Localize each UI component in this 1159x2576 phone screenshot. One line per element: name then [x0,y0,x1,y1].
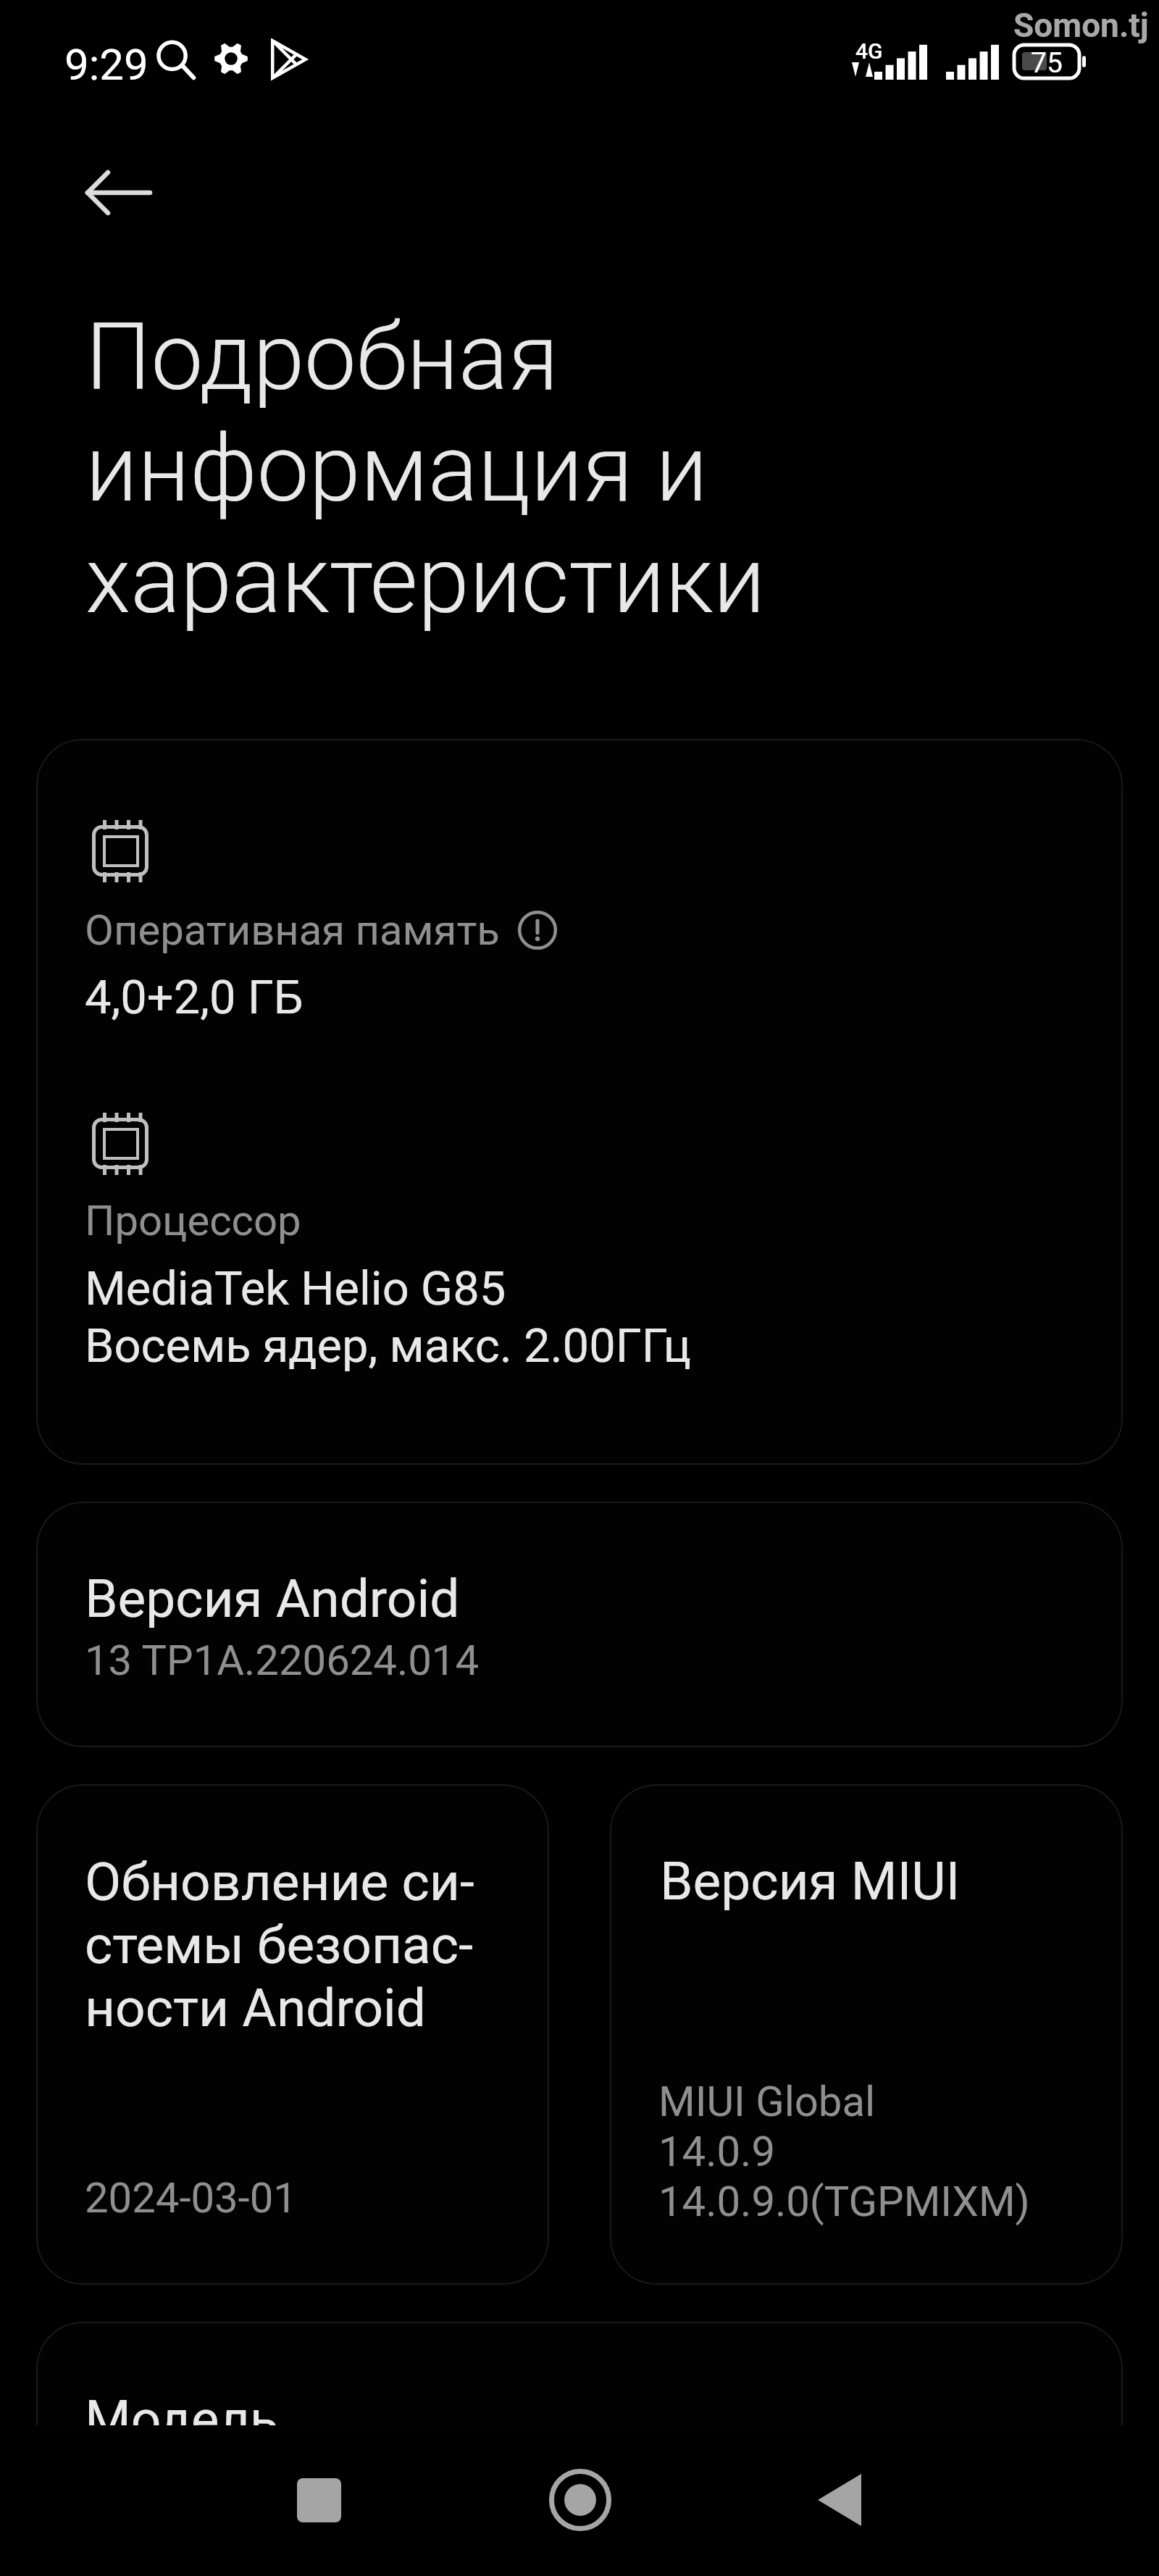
staticText: 13 TP1A.220624.014 [85,1635,480,1686]
staticText: MIUI Global 14.0.9 14.0.9.0(TGPMIXM) [658,2076,1030,2226]
staticText: 9:29 [64,38,148,91]
staticText: Somon.tj [1013,5,1149,45]
staticText: Оперативная память [85,905,500,955]
staticText: 4G [855,38,883,64]
button[interactable]: Back [800,2460,879,2540]
staticText: Модель [85,2388,279,2451]
staticText: 2024-03-01 [85,2173,297,2223]
staticText: Версия MIUI [660,1849,961,1913]
button[interactable]: Версия Android [36,1502,1123,1747]
staticText: Восемь ядер, макс. 2.00ГГц [85,1317,692,1373]
staticText: Обновление си- стемы безопас- ности Andr… [85,1850,474,2039]
staticText: 4,0+2,0 ГБ [85,969,304,1025]
staticText: Подробная информация и характеристики [85,301,766,635]
staticText: 75 [1031,46,1063,80]
button[interactable]: Home [540,2460,620,2540]
button[interactable]: Recent apps [279,2460,359,2540]
button[interactable]: Обновление си- стемы безопас- ности Andr… [36,1784,549,2285]
staticText: Версия Android [85,1567,460,1631]
button[interactable]: Back [48,153,190,233]
button[interactable]: Оперативная память [36,739,1123,1465]
button[interactable]: Версия MIUI [610,1784,1123,2285]
button[interactable]: Модель [36,2322,1123,2576]
staticText: Процессор [85,1195,301,1246]
staticText: MediaTek Helio G85 [85,1260,506,1316]
